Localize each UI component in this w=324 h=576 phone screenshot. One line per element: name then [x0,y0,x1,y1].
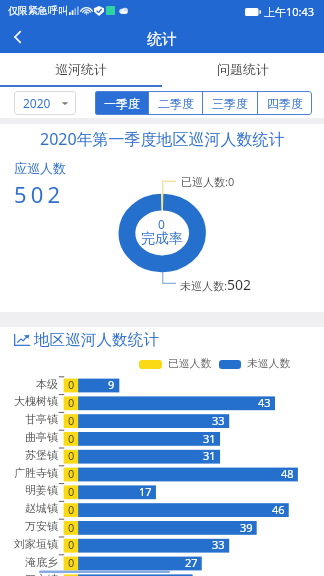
staticText: 二季度 [158,96,194,111]
staticText: 0 [68,377,75,392]
staticText: 0 [68,448,75,463]
staticText: 本级 [36,377,58,391]
staticText: 2020年第一季度地区巡河人数统计 [40,128,285,150]
button[interactable]: 二季度 [149,91,202,115]
staticText: 曲亭镇 [25,430,58,444]
staticText: 0 [68,555,75,570]
staticText: 17 [139,484,152,499]
staticText: 刘家垣镇 [14,537,58,551]
button[interactable]: 一季度 [95,91,148,115]
staticText: 0 [68,573,75,576]
staticText: 33 [212,537,225,552]
staticText: 未巡人数 [247,357,291,371]
staticText: 502 [14,179,65,209]
staticText: 0 [68,502,75,517]
staticText: 一季度 [104,96,140,111]
staticText: 9 [108,377,115,392]
staticText: 43 [258,395,271,410]
button[interactable]: 三季度 [203,91,257,115]
staticText: 淹底乡 [25,555,58,569]
staticText: 地区巡河人数统计 [34,330,159,350]
staticText: 三季度 [212,96,248,111]
staticText: 巡河统计 [55,61,107,77]
staticText: 四季度 [267,96,303,111]
staticText: 上午10:43 [264,4,315,19]
staticText: 明姜镇 [25,483,58,497]
staticText: 大槐树镇 [14,394,58,408]
staticText: 502 [227,275,252,294]
staticText: 已巡人数 [168,357,212,371]
staticText: 0 [68,484,75,499]
staticText: 甘亭镇 [25,412,58,426]
staticText: 万安镇 [25,519,58,533]
button[interactable]: 2020 [14,91,76,115]
staticText: 2020 [23,95,51,111]
staticText: 赵城镇 [25,501,58,515]
staticText: 苏堡镇 [25,448,58,462]
staticText: 广胜寺镇 [14,466,58,480]
staticText: 31 [203,431,216,446]
staticText: 三交镇 [25,572,58,576]
staticText: 问题统计 [217,61,269,77]
button[interactable]: 四季度 [258,91,312,115]
staticText: 未巡人数: [180,278,227,293]
staticText: 48 [281,466,294,481]
staticText: 27 [185,555,198,570]
button[interactable]: 巡河统计 [0,53,162,84]
staticText: 0 [68,537,75,552]
staticText: 0 [68,395,75,410]
staticText: 统计 [147,30,177,49]
button[interactable]: 问题统计 [162,53,324,84]
button[interactable]: Back [2,21,34,53]
staticText: 33 [212,413,225,428]
staticText: 0 [68,431,75,446]
staticText: 0 [68,520,75,535]
staticText: 已巡人数:0 [181,174,235,189]
staticText: 0 [158,216,165,232]
staticText: 应巡人数 [14,160,66,176]
staticText: 39 [240,520,253,535]
staticText: 46 [272,502,285,517]
staticText: 完成率 [141,230,183,248]
staticText: 0 [68,466,75,481]
staticText: 31 [203,448,216,463]
staticText: 25 [175,573,188,576]
staticText: 仅限紧急呼叫 [8,4,68,17]
staticText: 0 [68,413,75,428]
